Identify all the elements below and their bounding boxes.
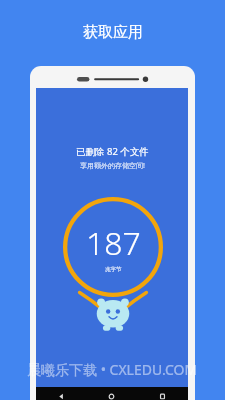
button[interactable]: Home xyxy=(86,387,137,400)
staticText: 晨曦乐下载 • CXLEDU.COM xyxy=(27,360,198,379)
staticText: 已删除 82 个文件 xyxy=(76,145,149,158)
staticText: 获取应用 xyxy=(83,23,143,42)
button[interactable]: Back xyxy=(36,387,86,400)
staticText: 享用额外的存储空间! xyxy=(80,161,145,171)
button[interactable]: Recent apps xyxy=(137,387,188,400)
staticText: 兆字节 xyxy=(105,266,122,273)
staticText: 187 xyxy=(86,221,141,265)
